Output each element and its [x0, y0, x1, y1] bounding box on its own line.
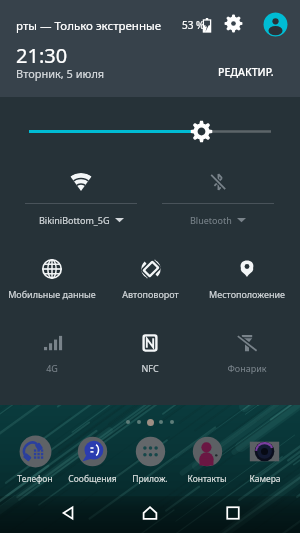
button[interactable]: Сообщения [65, 431, 119, 487]
button[interactable]: BikiniBottom_5G [13, 162, 149, 234]
staticText: 4G [46, 362, 58, 374]
staticText: Местоположение [209, 288, 285, 300]
staticText: 53 % [182, 18, 205, 32]
button[interactable]: Автоповорот [101, 258, 199, 308]
button[interactable]: Settings [224, 14, 243, 33]
button[interactable]: Back [48, 496, 88, 530]
button[interactable]: Камера [237, 431, 291, 487]
staticText: Вторник, 5 июля [16, 66, 105, 81]
button[interactable]: User profile [263, 12, 288, 37]
staticText: Мобильные данные [8, 288, 96, 300]
button[interactable]: Bluetooth [150, 162, 286, 234]
button[interactable]: Фонарик [198, 332, 296, 382]
staticText: Автоповорот [122, 288, 179, 300]
staticText: Телефон [17, 473, 53, 485]
staticText: Камера [249, 473, 281, 485]
button[interactable]: Recents [213, 496, 253, 530]
button[interactable]: Мобильные данные [3, 258, 101, 308]
button[interactable]: Местоположение [198, 258, 296, 308]
staticText: Прилож. [132, 473, 168, 485]
staticText: 21:30 [16, 42, 68, 69]
button[interactable]: NFC [101, 332, 199, 382]
staticText: Контакты [187, 473, 227, 485]
button[interactable]: Прилож. [123, 431, 177, 487]
button[interactable]: Brightness [0, 97, 300, 165]
button[interactable]: Home [130, 496, 170, 530]
staticText: Сообщения [68, 473, 117, 485]
button[interactable]: Контакты [180, 431, 234, 487]
button[interactable]: РЕДАКТИР. [212, 60, 280, 84]
button[interactable]: Телефон [8, 431, 62, 487]
staticText: BikiniBottom_5G [39, 214, 110, 226]
staticText: NFC [141, 362, 159, 374]
staticText: РЕДАКТИР. [218, 65, 274, 79]
staticText: рты — Только экстренные [16, 18, 162, 34]
button[interactable]: 4G [3, 332, 101, 382]
staticText: Bluetooth [190, 214, 232, 226]
staticText: Фонарик [227, 362, 267, 374]
